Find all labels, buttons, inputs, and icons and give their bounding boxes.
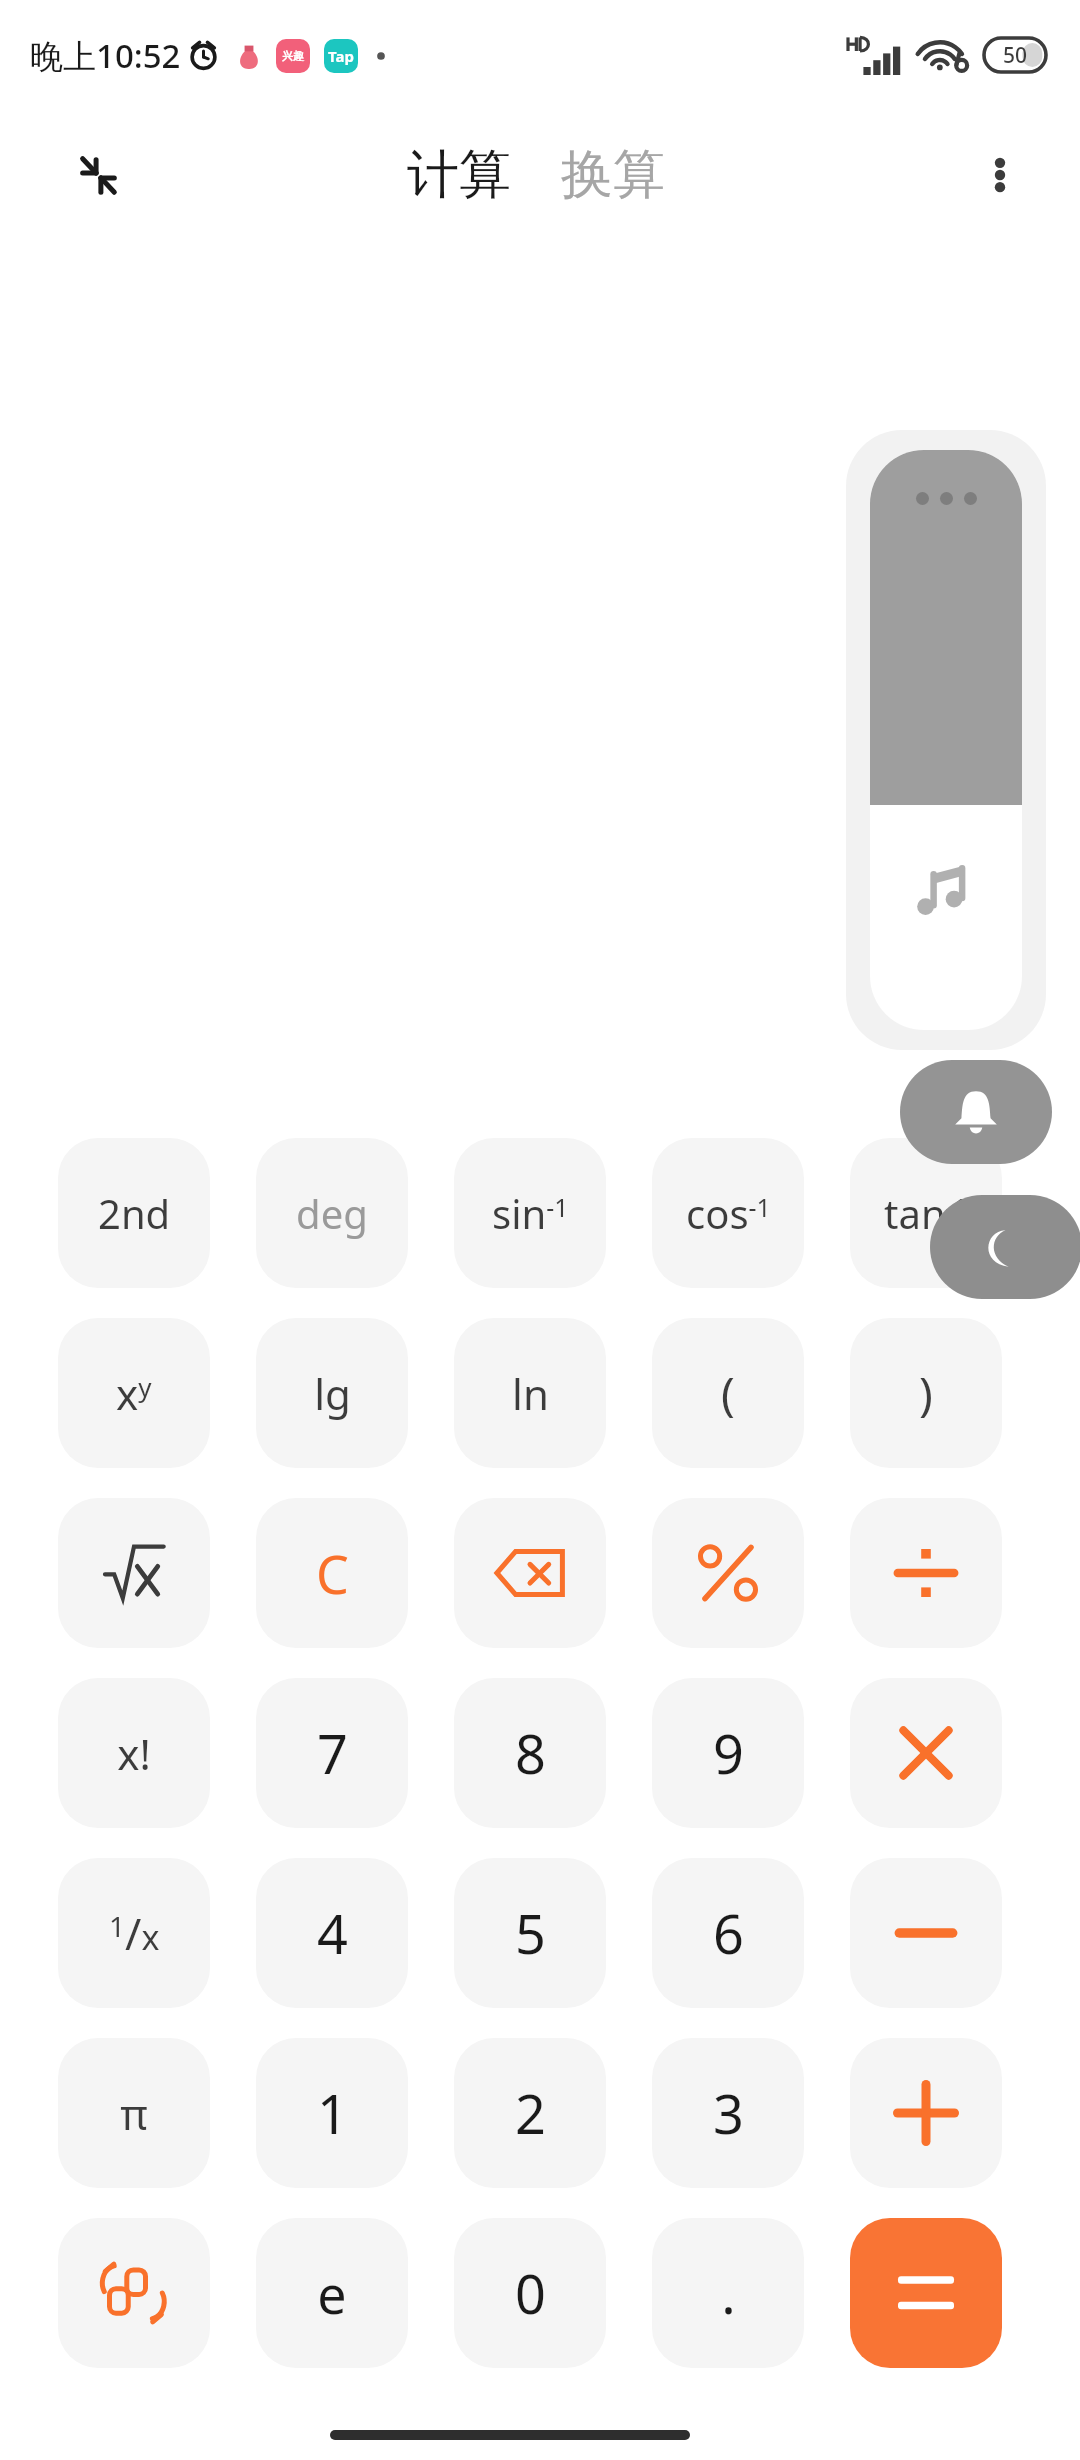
staticText: 8 bbox=[515, 1716, 546, 1790]
staticText: 1 bbox=[317, 2076, 348, 2150]
button[interactable]: Convert bbox=[58, 2218, 210, 2368]
button[interactable]: Notifications bbox=[900, 1060, 1052, 1164]
button[interactable]: Minus bbox=[850, 1858, 1002, 2008]
button[interactable]: ) bbox=[850, 1318, 1002, 1468]
staticText: 晚上10:52 bbox=[30, 33, 181, 78]
button[interactable]: 0 bbox=[454, 2218, 606, 2368]
button[interactable]: Multiply bbox=[850, 1678, 1002, 1828]
staticText: 6 bbox=[713, 1896, 744, 1970]
staticText: tan-1 bbox=[884, 1186, 968, 1240]
staticText: e bbox=[317, 2258, 347, 2329]
staticText: lg bbox=[314, 1365, 351, 1422]
staticText: 3 bbox=[713, 2076, 744, 2150]
button[interactable]: Square root bbox=[58, 1498, 210, 1648]
button[interactable]: Equals bbox=[850, 2218, 1002, 2368]
button[interactable]: π bbox=[58, 2038, 210, 2188]
button[interactable]: 2 bbox=[454, 2038, 606, 2188]
button[interactable]: 4 bbox=[256, 1858, 408, 2008]
staticText: 2nd bbox=[98, 1186, 171, 1240]
staticText: Tap bbox=[328, 46, 354, 66]
button[interactable]: cos-1 bbox=[652, 1138, 804, 1288]
button[interactable]: x! bbox=[58, 1678, 210, 1828]
staticText: π bbox=[120, 2085, 148, 2142]
staticText: 2 bbox=[515, 2076, 546, 2150]
staticText: 7 bbox=[317, 1716, 348, 1790]
button[interactable]: 3 bbox=[652, 2038, 804, 2188]
button[interactable]: Percent bbox=[652, 1498, 804, 1648]
staticText: x! bbox=[117, 1725, 151, 1782]
button[interactable]: 计算 bbox=[399, 136, 519, 214]
button[interactable]: 7 bbox=[256, 1678, 408, 1828]
button[interactable]: 6 bbox=[652, 1858, 804, 2008]
button[interactable]: Backspace bbox=[454, 1498, 606, 1648]
button[interactable]: C bbox=[256, 1498, 408, 1648]
staticText: xy bbox=[116, 1365, 152, 1422]
button[interactable]: 1 bbox=[256, 2038, 408, 2188]
button[interactable]: tan-1 bbox=[850, 1138, 1002, 1288]
staticText: 计算 bbox=[407, 142, 511, 208]
staticText: ( bbox=[721, 1362, 735, 1425]
staticText: sin-1 bbox=[492, 1186, 569, 1240]
button[interactable]: sin-1 bbox=[454, 1138, 606, 1288]
button[interactable]: 9 bbox=[652, 1678, 804, 1828]
button[interactable]: xy bbox=[58, 1318, 210, 1468]
button[interactable]: More options bbox=[972, 147, 1028, 203]
button[interactable]: 2nd bbox=[58, 1138, 210, 1288]
button[interactable]: . bbox=[652, 2218, 804, 2368]
button[interactable]: ( bbox=[652, 1318, 804, 1468]
staticText: ) bbox=[919, 1362, 933, 1425]
staticText: 5 bbox=[515, 1896, 546, 1970]
button[interactable]: ln bbox=[454, 1318, 606, 1468]
staticText: 换算 bbox=[561, 142, 665, 208]
staticText: cos-1 bbox=[686, 1186, 771, 1240]
staticText: 50 bbox=[1003, 41, 1028, 70]
button[interactable]: Divide bbox=[850, 1498, 1002, 1648]
staticText: C bbox=[316, 1538, 349, 1609]
staticText: 4 bbox=[317, 1896, 348, 1970]
button[interactable]: Do not disturb bbox=[930, 1195, 1080, 1299]
button[interactable]: e bbox=[256, 2218, 408, 2368]
button[interactable]: Music player bbox=[870, 450, 1022, 1030]
button[interactable]: Plus bbox=[850, 2038, 1002, 2188]
button[interactable]: 8 bbox=[454, 1678, 606, 1828]
staticText: . bbox=[721, 2256, 736, 2330]
button[interactable]: lg bbox=[256, 1318, 408, 1468]
button[interactable]: 1/x bbox=[58, 1858, 210, 2008]
button[interactable]: Collapse bbox=[70, 147, 126, 203]
button[interactable]: deg bbox=[256, 1138, 408, 1288]
staticText: 1/x bbox=[109, 1903, 160, 1963]
staticText: 9 bbox=[713, 1716, 744, 1790]
button[interactable]: 5 bbox=[454, 1858, 606, 2008]
staticText: 0 bbox=[515, 2256, 546, 2330]
staticText: deg bbox=[296, 1186, 368, 1240]
staticText: ln bbox=[512, 1365, 549, 1422]
staticText: 兴趣 bbox=[282, 49, 304, 63]
button[interactable]: 换算 bbox=[553, 136, 673, 214]
